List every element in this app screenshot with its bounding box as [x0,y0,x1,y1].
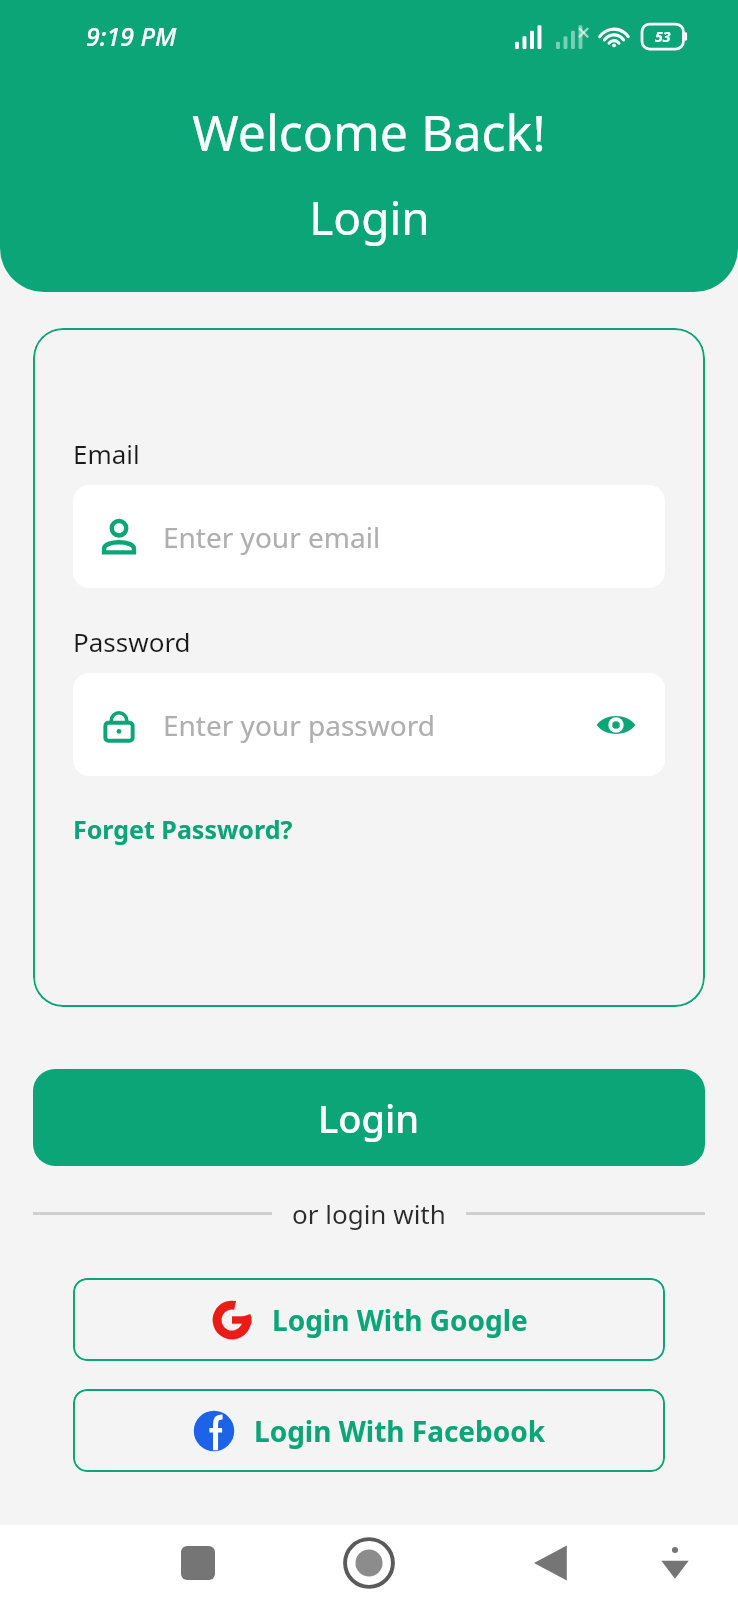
staticText: Login [309,186,430,249]
staticText: Password [73,624,191,659]
button[interactable]: Login With Google [73,1278,665,1361]
staticText: Enter your password [163,706,591,744]
staticText: Login With Facebook [254,1412,546,1450]
staticText: Login [318,1092,420,1144]
button[interactable]: Hide keyboard [646,1534,704,1592]
button[interactable]: Show password [591,700,641,750]
staticText: 53 [655,27,671,46]
staticText: Login With Google [272,1301,528,1339]
button[interactable]: Forget Password? [73,810,293,848]
staticText: 9:19 PM [86,19,177,53]
staticText: Enter your email [163,518,641,556]
staticText: Welcome Back! [192,98,546,166]
button[interactable]: Enter your password [73,673,665,776]
staticText: Email [73,436,140,471]
staticText: Forget Password? [73,812,293,846]
button[interactable]: Enter your email [73,485,665,588]
button[interactable]: Back [520,1533,580,1593]
staticText: or login with [292,1196,446,1231]
button[interactable]: Recent apps [168,1533,228,1593]
button[interactable]: Login [33,1069,705,1166]
button[interactable]: Home [337,1531,401,1595]
button[interactable]: Login With Facebook [73,1389,665,1472]
